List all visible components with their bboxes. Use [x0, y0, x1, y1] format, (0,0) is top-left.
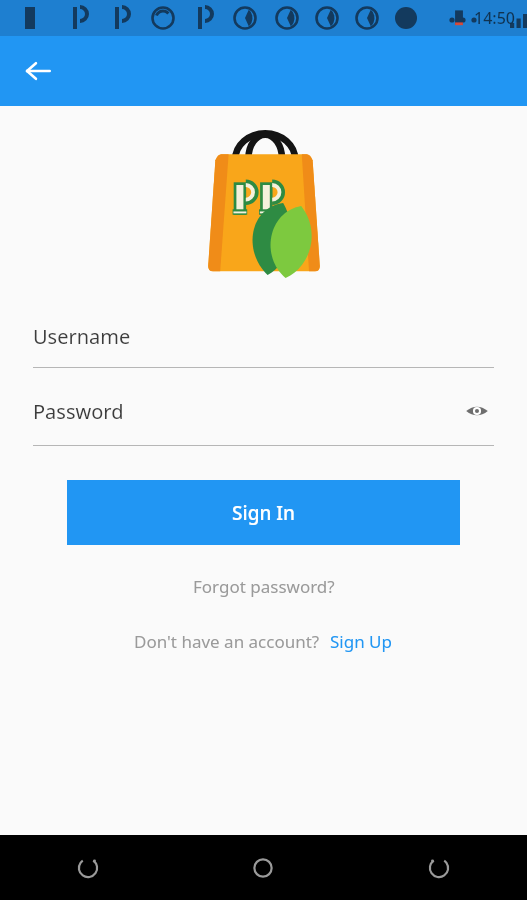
staticText: 14:50	[474, 7, 515, 29]
button[interactable]: Back	[14, 47, 62, 95]
staticText: Password	[33, 398, 460, 425]
button[interactable]: Home	[235, 840, 291, 896]
staticText: Username	[33, 323, 494, 350]
button[interactable]: Show password	[460, 394, 494, 428]
button[interactable]: Sign Up	[328, 626, 394, 657]
staticText: Don't have an account?	[134, 630, 320, 653]
staticText: Sign Up	[330, 630, 392, 653]
button[interactable]: Password	[0, 394, 527, 446]
button[interactable]: Back	[60, 840, 116, 896]
button[interactable]: Username	[0, 323, 527, 368]
staticText: Sign In	[232, 500, 295, 526]
button[interactable]: Sign In	[67, 480, 460, 545]
staticText: Forgot password?	[193, 575, 335, 598]
button[interactable]: Forgot password?	[181, 569, 347, 604]
button[interactable]: Recent apps	[411, 840, 467, 896]
